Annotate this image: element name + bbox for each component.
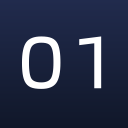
staticText: 01 — [18, 10, 108, 108]
